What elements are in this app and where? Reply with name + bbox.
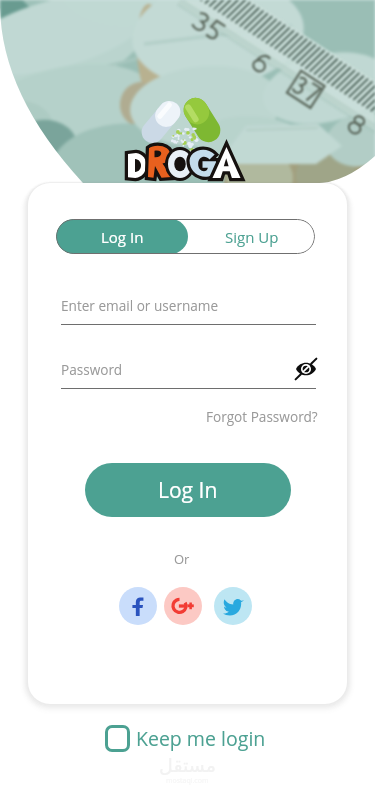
staticText: Keep me login	[136, 725, 266, 752]
button[interactable]: Sign in with Facebook	[119, 587, 157, 625]
staticText: Forgot Password?	[206, 407, 318, 426]
staticText: Password	[61, 360, 296, 379]
staticText: Or	[174, 550, 190, 568]
staticText: Sign Up	[225, 227, 279, 247]
button[interactable]: Forgot Password?	[206, 407, 318, 426]
button[interactable]: Sign in with Google	[164, 587, 202, 625]
button[interactable]: Log In	[56, 219, 188, 254]
button[interactable]: Log In	[85, 463, 291, 517]
staticText: Log In	[158, 476, 218, 505]
button[interactable]: Show password	[296, 359, 316, 379]
button[interactable]: Keep me login	[105, 725, 266, 752]
button[interactable]: Sign Up	[188, 219, 315, 254]
staticText: Log In	[101, 227, 144, 247]
button[interactable]: Sign in with Twitter	[214, 587, 252, 625]
staticText: Enter email or username	[61, 296, 316, 315]
staticText: مستقل	[159, 754, 216, 776]
